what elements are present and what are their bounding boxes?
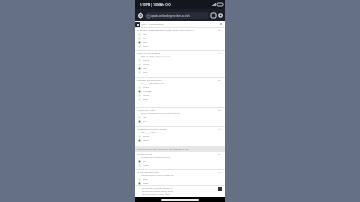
button[interactable]: Input: [137, 138, 222, 142]
staticText: If there is a list: [137, 153, 153, 156]
staticText: Quiz 1 - Computational: [141, 23, 164, 26]
staticText: Which of the following: [137, 52, 160, 55]
staticText: False: [143, 182, 149, 185]
staticText: This content is neither created nor: [142, 187, 173, 190]
staticText: Ten: [143, 67, 147, 70]
button[interactable]: Google Forms: [135, 22, 140, 27]
staticText: Yes: [143, 116, 147, 119]
staticText: Thirteen: [143, 90, 152, 93]
staticText: Three: [143, 63, 149, 66]
staticText: Consider the expression: [137, 79, 162, 82]
staticText: 1:10 PM | 1.5MB/s: [140, 3, 164, 7]
staticText: 1/1: [218, 128, 222, 131]
button[interactable]: True: [137, 177, 222, 181]
button[interactable]: Yes: [137, 32, 222, 36]
button[interactable]: More options: [217, 12, 223, 18]
staticText: Two: [143, 71, 148, 74]
button[interactable]: False: [137, 181, 222, 185]
button[interactable]: Three: [137, 62, 222, 66]
button[interactable]: Yes: [137, 115, 222, 119]
button[interactable]: Home: [137, 12, 144, 19]
staticText: Yes: [143, 160, 147, 163]
staticText: Complete the correct answer: [137, 128, 167, 131]
staticText: x = ____ , the value of it is: [141, 82, 165, 85]
button[interactable]: qweb.onlinedegree.iitm.ac.in/s: [145, 12, 209, 19]
button[interactable]: Result: [137, 134, 222, 138]
button[interactable]: Ten: [137, 66, 222, 70]
staticText: Nope: [143, 164, 149, 167]
staticText: x[n] = a + b(n) + c(n), n = 0,1,2,3: [141, 55, 171, 58]
staticText: No: [143, 37, 146, 40]
staticText: 0/1: [218, 79, 222, 82]
staticText: Eight: [143, 98, 149, 101]
staticText: qweb.onlinedegree.iitm.ac.in/s: [151, 14, 190, 18]
staticText: True: [143, 178, 148, 181]
staticText: 0/1: [218, 29, 222, 32]
staticText: To know a computational problem, given t…: [137, 29, 194, 32]
staticText: No: [143, 120, 146, 123]
staticText: 0/1: [218, 109, 222, 112]
staticText: Can: [143, 41, 147, 44]
button[interactable]: Can: [137, 40, 222, 44]
button[interactable]: Must: [137, 44, 222, 48]
button[interactable]: Nope: [137, 163, 222, 167]
staticText: which is a valid for the first order for…: [141, 112, 180, 115]
staticText: 1/1: [218, 171, 222, 174]
button[interactable]: Tabs: [210, 12, 216, 18]
button[interactable]: Three: [137, 93, 222, 97]
button[interactable]: Thirteen: [137, 89, 222, 93]
button[interactable]: Seven: [137, 58, 222, 62]
staticText: Terms of Service - Privacy Policy: [142, 193, 171, 196]
staticText: Total marks for this section for this qu…: [137, 148, 189, 151]
staticText: A S(x,R) first order: [137, 109, 156, 112]
staticText: endorsed by Google. Report Abuse -: [142, 190, 175, 193]
button[interactable]: Eight: [137, 97, 222, 101]
staticText: Seven: [143, 86, 150, 89]
button[interactable]: No: [137, 36, 222, 40]
staticText: Yes: [143, 33, 147, 36]
button[interactable]: Seven: [137, 85, 222, 89]
staticText: Number two codes each of the: [141, 156, 170, 159]
button[interactable]: Two: [137, 70, 222, 74]
staticText: Seven: [143, 59, 150, 62]
staticText: In the case with code: [137, 171, 159, 174]
staticText: The ______ key is: [141, 131, 157, 134]
staticText: Three: [143, 94, 149, 97]
staticText: Result: [143, 135, 150, 138]
staticText: Input: [143, 139, 149, 142]
staticText: identify which is correct answer sel: [141, 174, 174, 177]
staticText: 1/1: [218, 52, 222, 55]
staticText: 0/1: [218, 153, 222, 156]
button[interactable]: Yes: [137, 159, 222, 163]
button[interactable]: No: [137, 119, 222, 123]
staticText: Must: [143, 45, 149, 48]
